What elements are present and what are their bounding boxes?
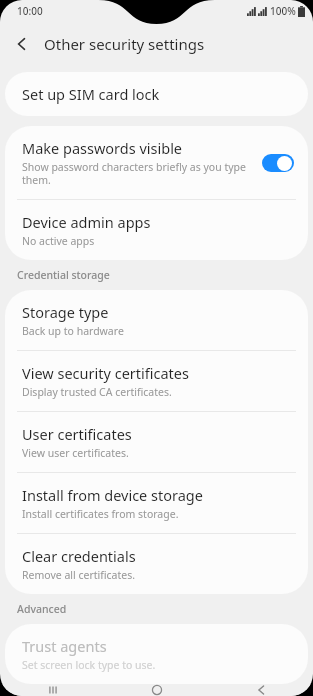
button[interactable]: User certificates — [5, 412, 308, 472]
button[interactable]: Clear credentials — [5, 534, 308, 594]
staticText: User certificates — [22, 424, 132, 444]
staticText: Clear credentials — [22, 546, 136, 566]
staticText: No active apps — [22, 234, 95, 248]
button[interactable]: Back — [209, 684, 313, 696]
staticText: Make passwords visible — [22, 138, 183, 158]
button[interactable]: Device admin apps — [5, 200, 308, 260]
staticText: Set screen lock type to use. — [22, 658, 156, 672]
staticText: Install certificates from storage. — [22, 507, 179, 521]
staticText: Trust agents — [22, 636, 107, 656]
button[interactable]: Toggle make passwords visible — [262, 154, 294, 172]
button[interactable]: View security certificates — [5, 351, 308, 411]
staticText: Display trusted CA certificates. — [22, 385, 172, 399]
staticText: Install from device storage — [22, 485, 203, 505]
staticText: 100% — [270, 4, 296, 18]
staticText: View user certificates. — [22, 446, 129, 460]
staticText: Advanced — [17, 602, 67, 616]
button[interactable]: Storage type — [5, 290, 308, 350]
staticText: Set up SIM card lock — [22, 84, 160, 104]
staticText: Remove all certificates. — [22, 568, 136, 582]
staticText: View security certificates — [22, 363, 189, 383]
staticText: Other security settings — [44, 34, 205, 54]
staticText: Device admin apps — [22, 212, 151, 232]
staticText: Storage type — [22, 302, 109, 322]
button[interactable]: Make passwords visible — [5, 126, 308, 199]
button[interactable]: Recents — [0, 684, 105, 696]
button[interactable]: Install from device storage — [5, 473, 308, 533]
button[interactable]: Back — [0, 22, 44, 66]
staticText: Show password characters briefly as you … — [22, 160, 254, 187]
staticText: Back up to hardware — [22, 324, 124, 338]
button[interactable]: Home — [105, 684, 209, 696]
staticText: 10:00 — [17, 4, 43, 18]
button[interactable]: Set up SIM card lock — [5, 72, 308, 116]
button[interactable]: Trust agents — [5, 624, 308, 684]
staticText: Credential storage — [17, 268, 110, 282]
